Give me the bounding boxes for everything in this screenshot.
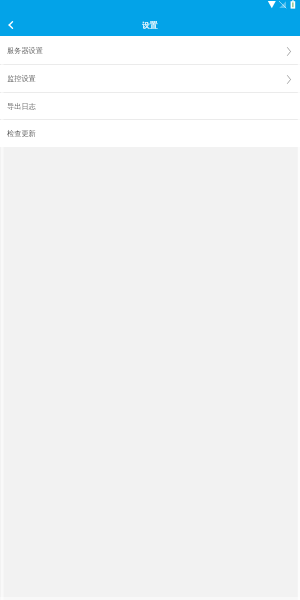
staticText: 导出日志: [7, 102, 36, 111]
staticText: 服务器设置: [7, 46, 43, 55]
staticText: 监控设置: [7, 74, 36, 83]
button[interactable]: 导出日志: [0, 93, 300, 119]
button[interactable]: Back: [0, 14, 22, 36]
button[interactable]: 服务器设置: [0, 36, 300, 64]
staticText: 设置: [142, 20, 158, 30]
button[interactable]: 监控设置: [0, 65, 300, 92]
button[interactable]: 检查更新: [0, 120, 300, 146]
staticText: 检查更新: [7, 129, 36, 138]
